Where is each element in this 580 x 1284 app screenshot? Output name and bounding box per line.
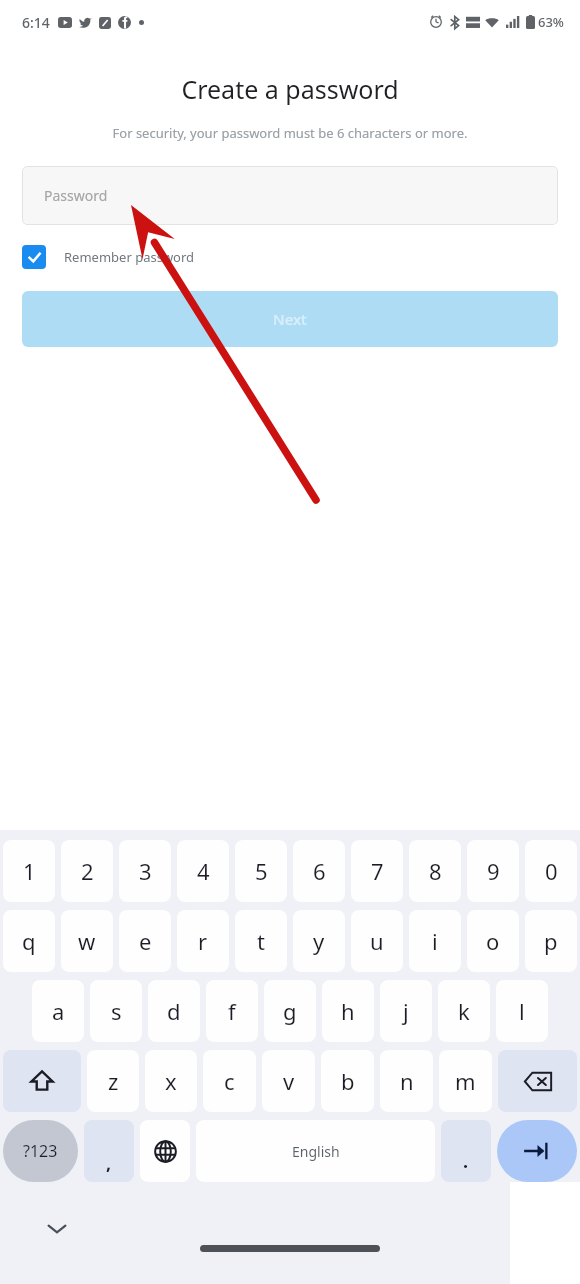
staticText: Create a password — [0, 72, 580, 106]
staticText: x — [165, 1066, 177, 1096]
staticText: h — [341, 996, 355, 1026]
button[interactable]: a — [32, 980, 84, 1042]
button[interactable]: e — [119, 910, 171, 972]
staticText: l — [519, 996, 525, 1026]
button[interactable]: v — [262, 1050, 315, 1112]
staticText: a — [52, 996, 65, 1026]
button[interactable]: i — [409, 910, 461, 972]
staticText: f — [228, 996, 236, 1026]
staticText: For security, your password must be 6 ch… — [0, 124, 580, 142]
button[interactable]: y — [293, 910, 345, 972]
button[interactable]: q — [3, 910, 55, 972]
staticText: i — [432, 926, 438, 956]
button[interactable]: b — [321, 1050, 374, 1112]
button[interactable]: 3 — [119, 840, 171, 902]
button[interactable]: 2 — [61, 840, 113, 902]
staticText: 63% — [538, 13, 564, 31]
button[interactable]: Backspace — [498, 1050, 577, 1112]
staticText: d — [167, 996, 181, 1026]
button[interactable]: 9 — [467, 840, 519, 902]
staticText: 9 — [487, 856, 500, 886]
staticText: English — [292, 1142, 340, 1161]
button[interactable]: z — [87, 1050, 139, 1112]
staticText: ?123 — [23, 1140, 58, 1162]
button[interactable]: Password — [22, 166, 558, 225]
staticText: z — [108, 1066, 119, 1096]
staticText: , — [106, 1151, 112, 1176]
button[interactable]: ?123 — [3, 1120, 78, 1182]
button[interactable]: p — [525, 910, 577, 972]
button[interactable]: m — [439, 1050, 492, 1112]
button[interactable]: 0 — [525, 840, 577, 902]
button[interactable]: w — [61, 910, 113, 972]
staticText: y — [313, 926, 325, 956]
button[interactable]: o — [467, 910, 519, 972]
staticText: q — [22, 926, 36, 956]
staticText: t — [257, 926, 265, 956]
staticText: 4 — [197, 856, 210, 886]
button[interactable]: . — [441, 1120, 491, 1182]
staticText: v — [283, 1066, 295, 1096]
staticText: 5 — [255, 856, 268, 886]
button[interactable]: n — [380, 1050, 433, 1112]
staticText: 7 — [371, 856, 384, 886]
button[interactable]: Remember password — [22, 245, 195, 269]
button[interactable]: 8 — [409, 840, 461, 902]
button[interactable]: Shift — [3, 1050, 81, 1112]
staticText: e — [139, 926, 152, 956]
button[interactable]: t — [235, 910, 287, 972]
button[interactable]: Hide keyboard — [42, 1214, 72, 1244]
staticText: s — [111, 996, 122, 1026]
button[interactable]: k — [438, 980, 490, 1042]
staticText: g — [283, 996, 297, 1026]
staticText: Password — [44, 186, 108, 205]
staticText: 6:14 — [22, 13, 50, 32]
button[interactable]: h — [322, 980, 374, 1042]
staticText: p — [544, 926, 558, 956]
staticText: j — [403, 996, 409, 1026]
button[interactable]: x — [145, 1050, 197, 1112]
button[interactable]: 6 — [293, 840, 345, 902]
staticText: 0 — [545, 856, 558, 886]
button[interactable]: f — [206, 980, 258, 1042]
button[interactable]: Next — [22, 291, 558, 347]
button[interactable]: d — [148, 980, 200, 1042]
button[interactable]: 4 — [177, 840, 229, 902]
button[interactable]: Change language — [140, 1120, 190, 1182]
staticText: m — [455, 1066, 476, 1096]
staticText: r — [198, 926, 208, 956]
staticText: u — [370, 926, 384, 956]
button[interactable]: , — [84, 1120, 134, 1182]
staticText: o — [486, 926, 500, 956]
staticText: b — [341, 1066, 355, 1096]
staticText: 1 — [23, 856, 36, 886]
button[interactable]: g — [264, 980, 316, 1042]
staticText: 3 — [139, 856, 152, 886]
button[interactable]: s — [90, 980, 142, 1042]
button[interactable]: u — [351, 910, 403, 972]
staticText: . — [463, 1149, 469, 1174]
staticText: Remember password — [64, 248, 195, 266]
staticText: c — [224, 1066, 235, 1096]
staticText: Next — [273, 309, 307, 329]
button[interactable]: 7 — [351, 840, 403, 902]
button[interactable]: r — [177, 910, 229, 972]
staticText: 6 — [313, 856, 326, 886]
staticText: w — [78, 926, 96, 956]
button[interactable]: l — [496, 980, 548, 1042]
staticText: k — [458, 996, 470, 1026]
staticText: n — [400, 1066, 414, 1096]
staticText: 8 — [429, 856, 442, 886]
button[interactable]: c — [203, 1050, 256, 1112]
button[interactable]: Next — [497, 1120, 577, 1182]
staticText: 2 — [81, 856, 94, 886]
button[interactable]: 1 — [3, 840, 55, 902]
button[interactable]: j — [380, 980, 432, 1042]
button[interactable]: English — [196, 1120, 435, 1182]
button[interactable]: 5 — [235, 840, 287, 902]
